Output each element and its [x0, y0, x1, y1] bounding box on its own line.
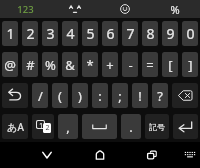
- button[interactable]: !: [132, 83, 148, 108]
- staticText: %: [170, 2, 180, 17]
- staticText: 123: [17, 3, 34, 16]
- staticText: ): [78, 87, 82, 105]
- button[interactable]: 0: [182, 21, 198, 46]
- button[interactable]: Enter: [173, 114, 198, 139]
- staticText: !: [138, 87, 142, 105]
- button[interactable]: 8: [142, 21, 158, 46]
- button[interactable]: 7: [122, 21, 138, 46]
- staticText: 記号: [149, 122, 165, 132]
- button[interactable]: 記号: [145, 114, 169, 139]
- button[interactable]: ]: [182, 52, 198, 77]
- staticText: .: [129, 118, 133, 136]
- staticText: #: [26, 56, 35, 74]
- staticText: =: [146, 56, 154, 74]
- staticText: 4: [66, 24, 75, 43]
- button[interactable]: +: [102, 52, 118, 77]
- staticText: 3: [46, 24, 55, 43]
- staticText: ?: [157, 87, 163, 105]
- button[interactable]: Recent apps: [139, 142, 165, 168]
- button[interactable]: *: [82, 52, 98, 77]
- staticText: *: [86, 56, 94, 74]
- button[interactable]: ;: [112, 83, 128, 108]
- staticText: 0: [186, 24, 195, 43]
- button[interactable]: 4: [62, 21, 78, 46]
- staticText: 2: [45, 123, 50, 133]
- button[interactable]: Change keyboard: [177, 142, 200, 168]
- button[interactable]: Undo: [2, 83, 28, 108]
- button[interactable]: あA: [2, 114, 28, 139]
- button[interactable]: (: [52, 83, 68, 108]
- button[interactable]: @: [2, 52, 18, 77]
- button[interactable]: #: [22, 52, 38, 77]
- staticText: 8: [146, 24, 155, 43]
- button[interactable]: ,: [58, 114, 78, 139]
- button[interactable]: ?: [152, 83, 168, 108]
- button[interactable]: 9: [162, 21, 178, 46]
- staticText: ;: [118, 87, 122, 105]
- staticText: [: [168, 56, 173, 74]
- button[interactable]: 5: [82, 21, 98, 46]
- button[interactable]: 3: [42, 21, 58, 46]
- button[interactable]: 123: [0, 0, 50, 18]
- staticText: @: [4, 56, 16, 74]
- staticText: (: [58, 87, 62, 105]
- button[interactable]: 6: [102, 21, 118, 46]
- button[interactable]: Emoji: [100, 0, 150, 18]
- button[interactable]: 1: [2, 21, 18, 46]
- staticText: 1: [39, 121, 43, 128]
- button[interactable]: Home: [87, 142, 113, 168]
- button[interactable]: ): [72, 83, 88, 108]
- staticText: %: [45, 56, 56, 74]
- staticText: 6: [106, 24, 115, 43]
- button[interactable]: :: [92, 83, 108, 108]
- staticText: 1: [6, 24, 15, 43]
- staticText: 5: [86, 24, 95, 43]
- button[interactable]: =: [142, 52, 158, 77]
- staticText: ,: [66, 118, 70, 136]
- button[interactable]: %: [42, 52, 58, 77]
- button[interactable]: Switch input method: [32, 114, 54, 139]
- button[interactable]: /: [32, 83, 48, 108]
- button[interactable]: .: [121, 114, 141, 139]
- staticText: &: [65, 56, 75, 74]
- staticText: 9: [166, 24, 175, 43]
- staticText: ]: [188, 56, 193, 74]
- button[interactable]: [: [162, 52, 178, 77]
- button[interactable]: &: [62, 52, 78, 77]
- button[interactable]: Hide keyboard: [34, 142, 60, 168]
- staticText: :: [98, 87, 102, 105]
- staticText: -: [128, 56, 133, 74]
- staticText: +: [106, 56, 114, 74]
- staticText: 2: [26, 24, 35, 43]
- button[interactable]: -: [122, 52, 138, 77]
- button[interactable]: Backspace: [172, 83, 198, 108]
- staticText: 7: [126, 24, 135, 43]
- staticText: あA: [7, 120, 24, 134]
- button[interactable]: Kaomoji: [50, 0, 100, 18]
- button[interactable]: Space: [82, 114, 117, 139]
- button[interactable]: 2: [22, 21, 38, 46]
- button[interactable]: %: [150, 0, 200, 18]
- staticText: /: [38, 87, 43, 105]
